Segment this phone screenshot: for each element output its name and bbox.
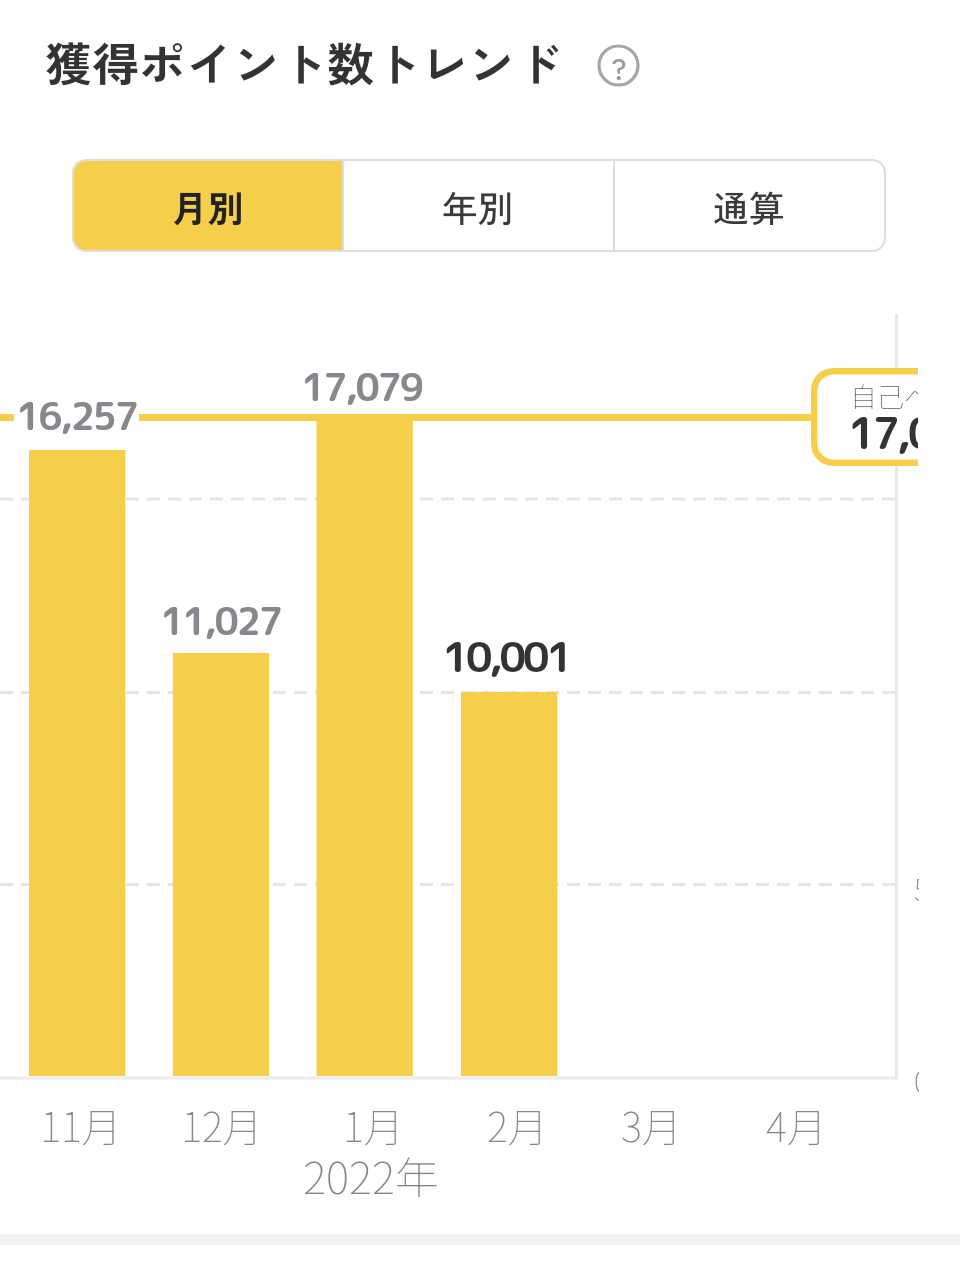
- staticText: ?: [611, 44, 627, 87]
- staticText: 獲得ポイント数トレンド: [45, 27, 562, 95]
- staticText: 年別: [442, 180, 515, 232]
- staticText: 月別: [172, 180, 245, 232]
- staticText: 5,000: [914, 866, 919, 906]
- staticText: 0: [914, 1058, 919, 1098]
- staticText: 10,001: [442, 627, 570, 686]
- staticText: 4月: [766, 1096, 827, 1154]
- button[interactable]: 月別: [74, 161, 342, 250]
- staticText: 1月: [343, 1096, 404, 1154]
- button[interactable]: 通算: [615, 161, 884, 250]
- staticText: 17,079pt: [848, 403, 918, 463]
- button[interactable]: 年別: [344, 161, 613, 250]
- staticText: 12月: [181, 1096, 263, 1154]
- staticText: 3月: [621, 1096, 682, 1154]
- staticText: 11,027: [160, 594, 281, 647]
- staticText: 2月: [487, 1096, 548, 1154]
- button[interactable]: ?: [597, 44, 640, 87]
- staticText: 17,079: [301, 360, 422, 413]
- staticText: 通算: [713, 180, 786, 232]
- staticText: 2022年: [303, 1143, 439, 1207]
- staticText: 11月: [40, 1096, 122, 1154]
- staticText: 自己ベスト: [850, 376, 918, 415]
- staticText: 16,257: [16, 389, 137, 442]
